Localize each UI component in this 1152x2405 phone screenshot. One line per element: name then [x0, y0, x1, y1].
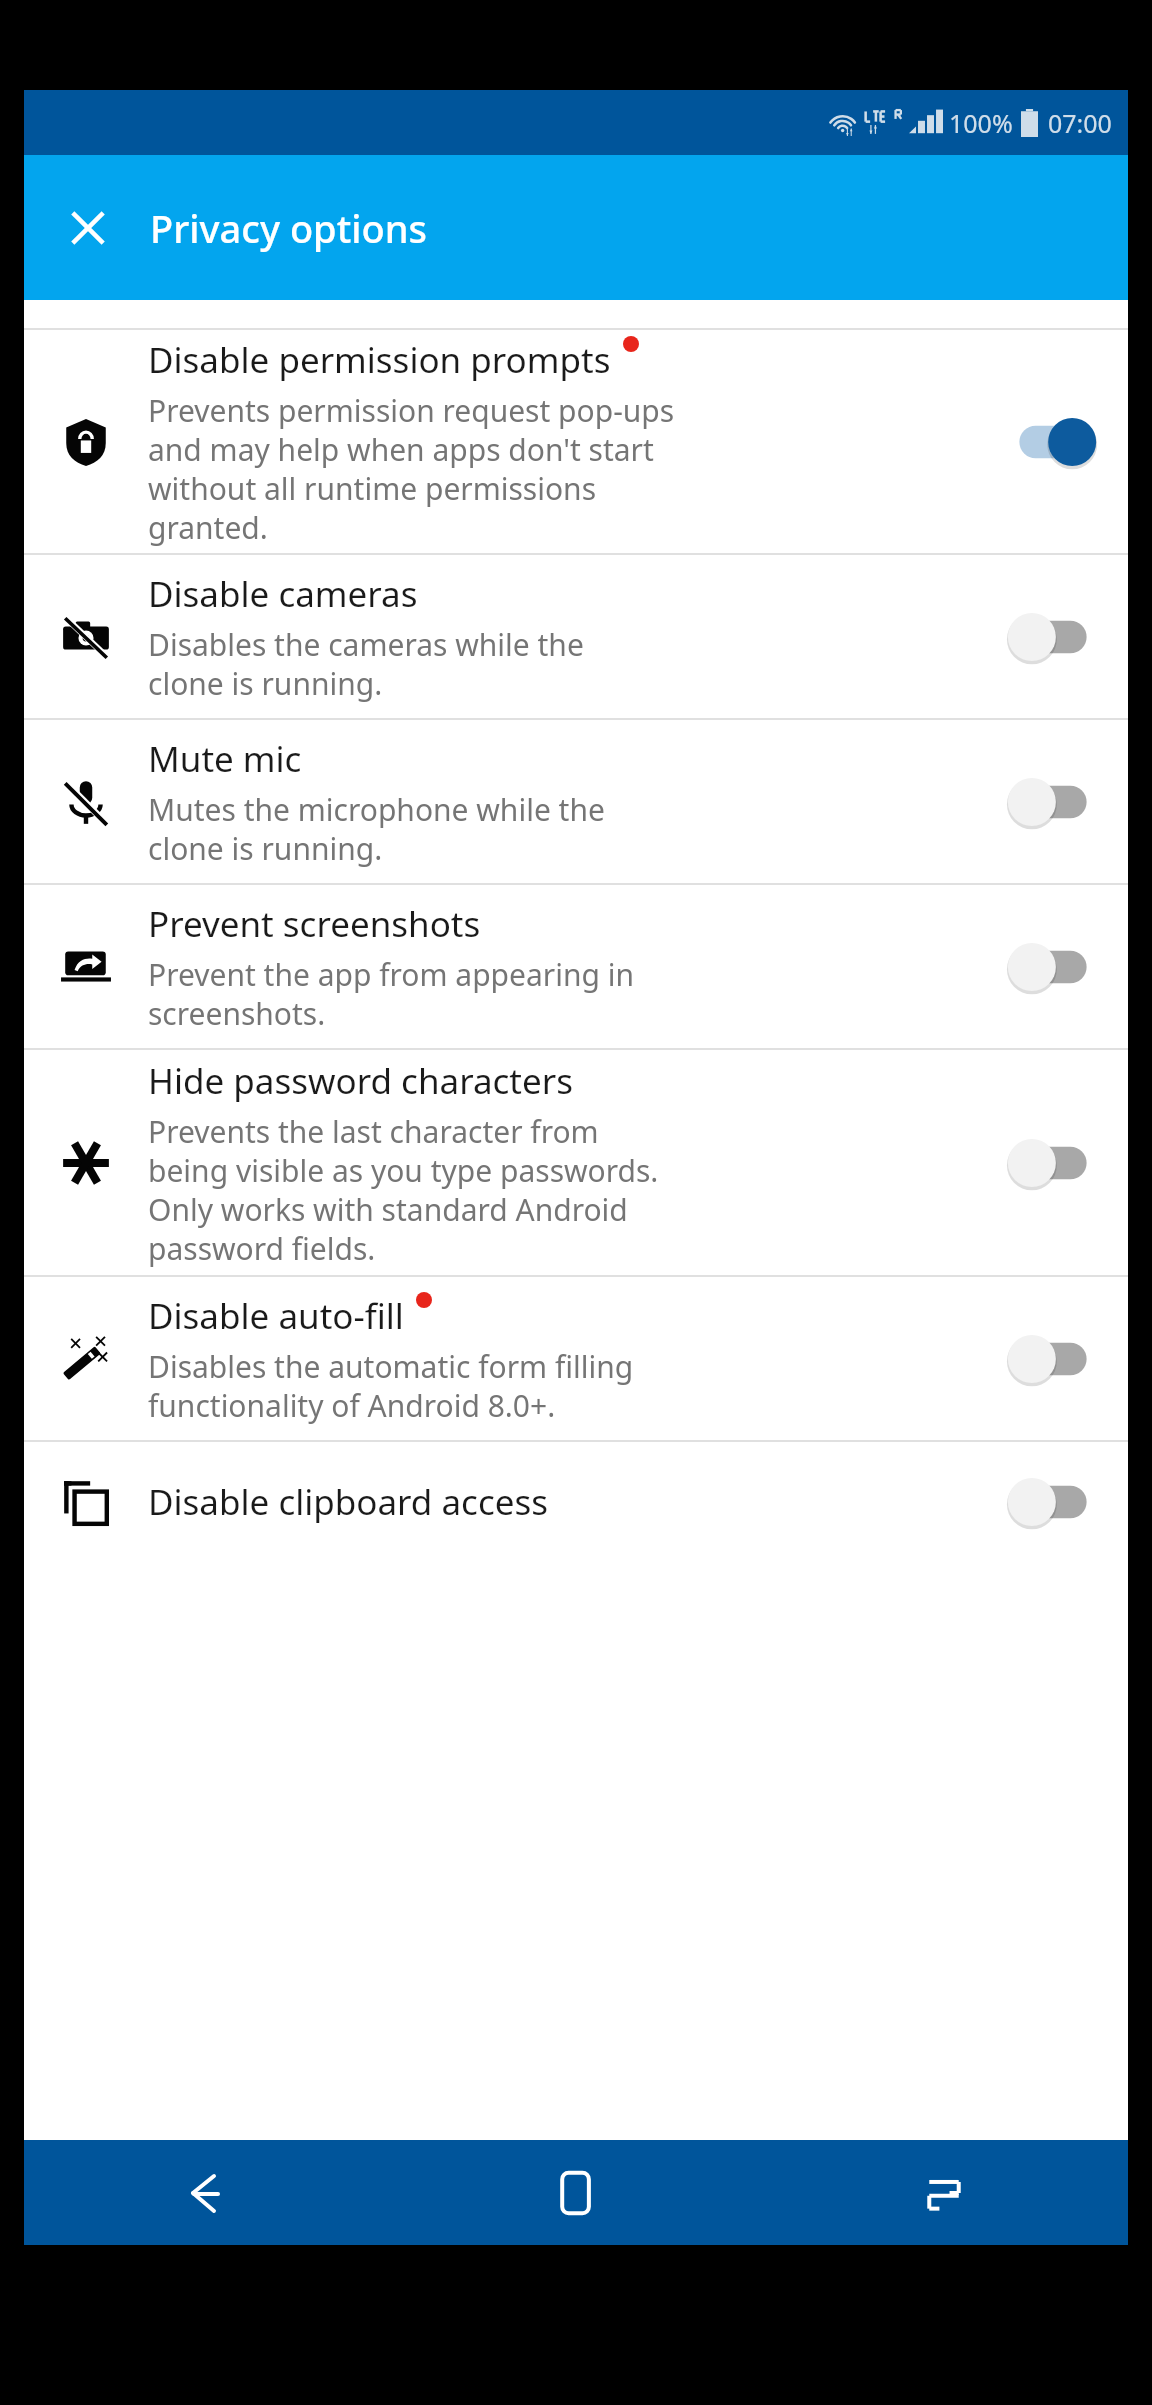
button[interactable]: Toggle off	[1005, 772, 1101, 832]
staticText: 07:00	[1048, 106, 1112, 140]
staticText: 100%	[949, 106, 1013, 140]
button[interactable]: Hide password characters	[24, 1050, 1128, 1275]
staticText: Mutes the microphone while the clone is …	[148, 789, 605, 868]
button[interactable]: Toggle off	[1005, 1329, 1101, 1389]
button[interactable]: Recent apps	[760, 2140, 1128, 2245]
staticText: Hide password characters	[148, 1057, 573, 1105]
button[interactable]: Toggle off	[1005, 1472, 1101, 1532]
staticText: Prevents the last character from being v…	[148, 1111, 659, 1268]
button[interactable]: Toggle on	[1005, 412, 1101, 472]
button[interactable]: Disable cameras	[24, 555, 1128, 718]
staticText: Prevent screenshots	[148, 900, 481, 948]
staticText: Disable permission prompts	[148, 336, 611, 384]
button[interactable]: Toggle off	[1005, 607, 1101, 667]
staticText: Disable clipboard access	[148, 1478, 548, 1526]
staticText: Mute mic	[148, 735, 302, 783]
button[interactable]: Disable clipboard access	[24, 1442, 1128, 1562]
button[interactable]: Close	[50, 190, 126, 266]
button[interactable]: Mute mic	[24, 720, 1128, 883]
button[interactable]: Toggle off	[1005, 1133, 1101, 1193]
button[interactable]: Prevent screenshots	[24, 885, 1128, 1048]
button[interactable]: Disable permission prompts	[24, 330, 1128, 553]
button[interactable]: Disable auto-fill	[24, 1277, 1128, 1440]
button[interactable]: Home	[392, 2140, 760, 2245]
staticText: Disables the cameras while the clone is …	[148, 624, 584, 703]
button[interactable]: Toggle off	[1005, 937, 1101, 997]
button[interactable]: Back	[24, 2140, 392, 2245]
staticText: Privacy options	[150, 202, 427, 254]
staticText: Disable auto-fill	[148, 1292, 404, 1340]
staticText: Disable cameras	[148, 570, 418, 618]
staticText: Prevent the app from appearing in screen…	[148, 954, 634, 1033]
staticText: Disables the automatic form filling func…	[148, 1346, 634, 1425]
staticText: Prevents permission request pop-ups and …	[148, 390, 675, 547]
